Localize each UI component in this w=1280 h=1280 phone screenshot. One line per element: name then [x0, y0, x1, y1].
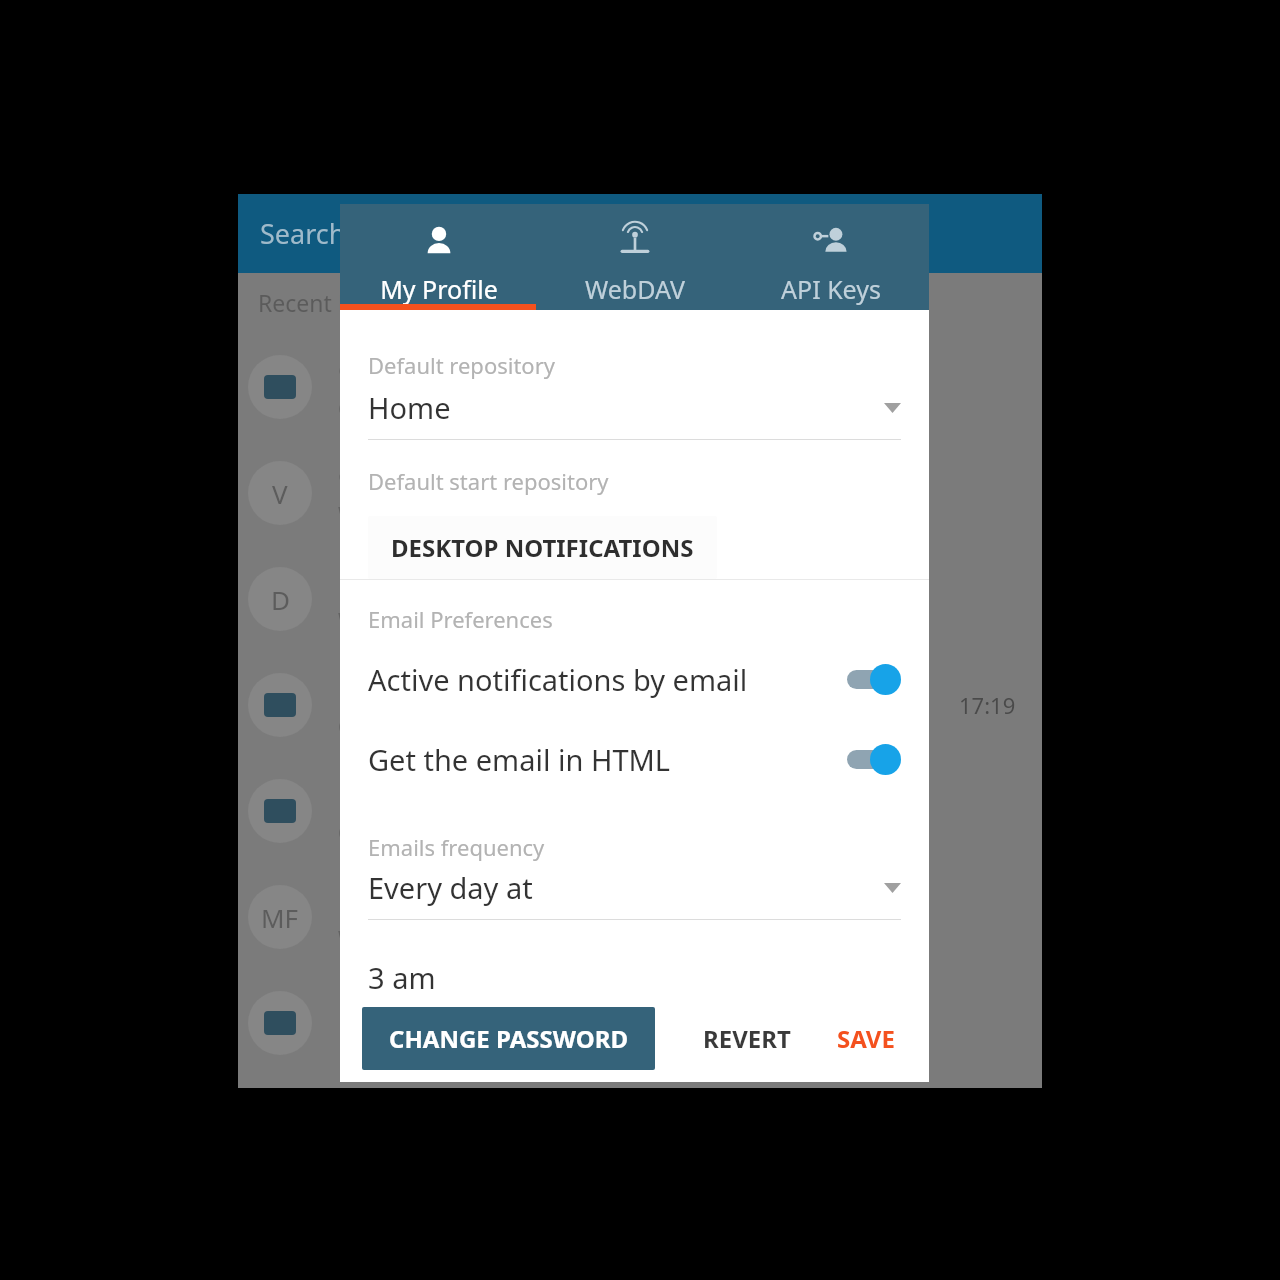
staticText: Workspace: [338, 925, 447, 954]
button[interactable]: D: [238, 546, 1042, 652]
staticText: API Keys: [781, 272, 881, 306]
staticText: hfjdjdjdd: [338, 987, 456, 1025]
button[interactable]: WebDAV: [537, 204, 733, 310]
staticText: REVERT: [703, 1022, 791, 1055]
button[interactable]: CHANGE PASSWORD: [362, 1007, 655, 1070]
button[interactable]: V: [238, 440, 1042, 546]
button[interactable]: API Keys: [733, 204, 929, 310]
staticText: Default start repository: [368, 466, 609, 496]
button[interactable]: MF: [238, 864, 1042, 970]
staticText: Other Files: [338, 351, 481, 389]
button[interactable]: Home: [368, 388, 901, 440]
staticText: WebDAV: [585, 272, 685, 306]
staticText: V: [272, 476, 288, 511]
staticText: Ministry: [338, 775, 445, 813]
staticText: Personal: [338, 563, 453, 601]
staticText: Recent History: [258, 287, 416, 318]
staticText: Git Version: [338, 395, 446, 424]
staticText: My Files: [338, 1031, 417, 1060]
staticText: CHANGE PASSWORD: [389, 1022, 628, 1055]
staticText: My Files: [338, 881, 444, 919]
button[interactable]: hfjdjdjdd: [238, 970, 1042, 1076]
button[interactable]: Other Files: [238, 334, 1042, 440]
staticText: Common: [338, 713, 429, 742]
staticText: Default repository: [368, 350, 555, 380]
button[interactable]: SAVE: [821, 1008, 911, 1069]
button[interactable]: Active notifications by email: [368, 652, 901, 706]
staticText: Email Preferences: [368, 604, 553, 634]
staticText: 3 am: [368, 958, 436, 995]
staticText: Workspace: [338, 607, 447, 636]
staticText: Get the email in HTML: [368, 740, 843, 779]
button[interactable]: Folder Sync: [238, 652, 1042, 758]
button[interactable]: My Profile: [340, 204, 537, 310]
button[interactable]: 3 am: [368, 958, 901, 995]
staticText: SAVE: [837, 1022, 895, 1055]
staticText: DESKTOP NOTIFICATIONS: [391, 531, 694, 564]
staticText: Active notifications by email: [368, 660, 843, 699]
staticText: Emails frequency: [368, 832, 545, 862]
staticText: Git Version: [338, 457, 482, 495]
staticText: Common: [338, 819, 429, 848]
staticText: My Profile: [380, 272, 498, 306]
button[interactable]: Ministry: [238, 758, 1042, 864]
staticText: Every day at: [368, 868, 884, 907]
staticText: Workspace: [338, 501, 447, 530]
staticText: D: [271, 582, 290, 617]
button[interactable]: Get the email in HTML: [368, 732, 901, 786]
staticText: 17:19: [959, 690, 1016, 720]
staticText: MF: [261, 900, 299, 935]
button[interactable]: Every day at: [368, 868, 901, 920]
staticText: Folder Sync: [338, 669, 489, 707]
staticText: Search in all files: [260, 215, 471, 252]
staticText: Home: [368, 388, 884, 427]
button[interactable]: REVERT: [687, 1008, 807, 1069]
button[interactable]: DESKTOP NOTIFICATIONS: [368, 516, 717, 579]
